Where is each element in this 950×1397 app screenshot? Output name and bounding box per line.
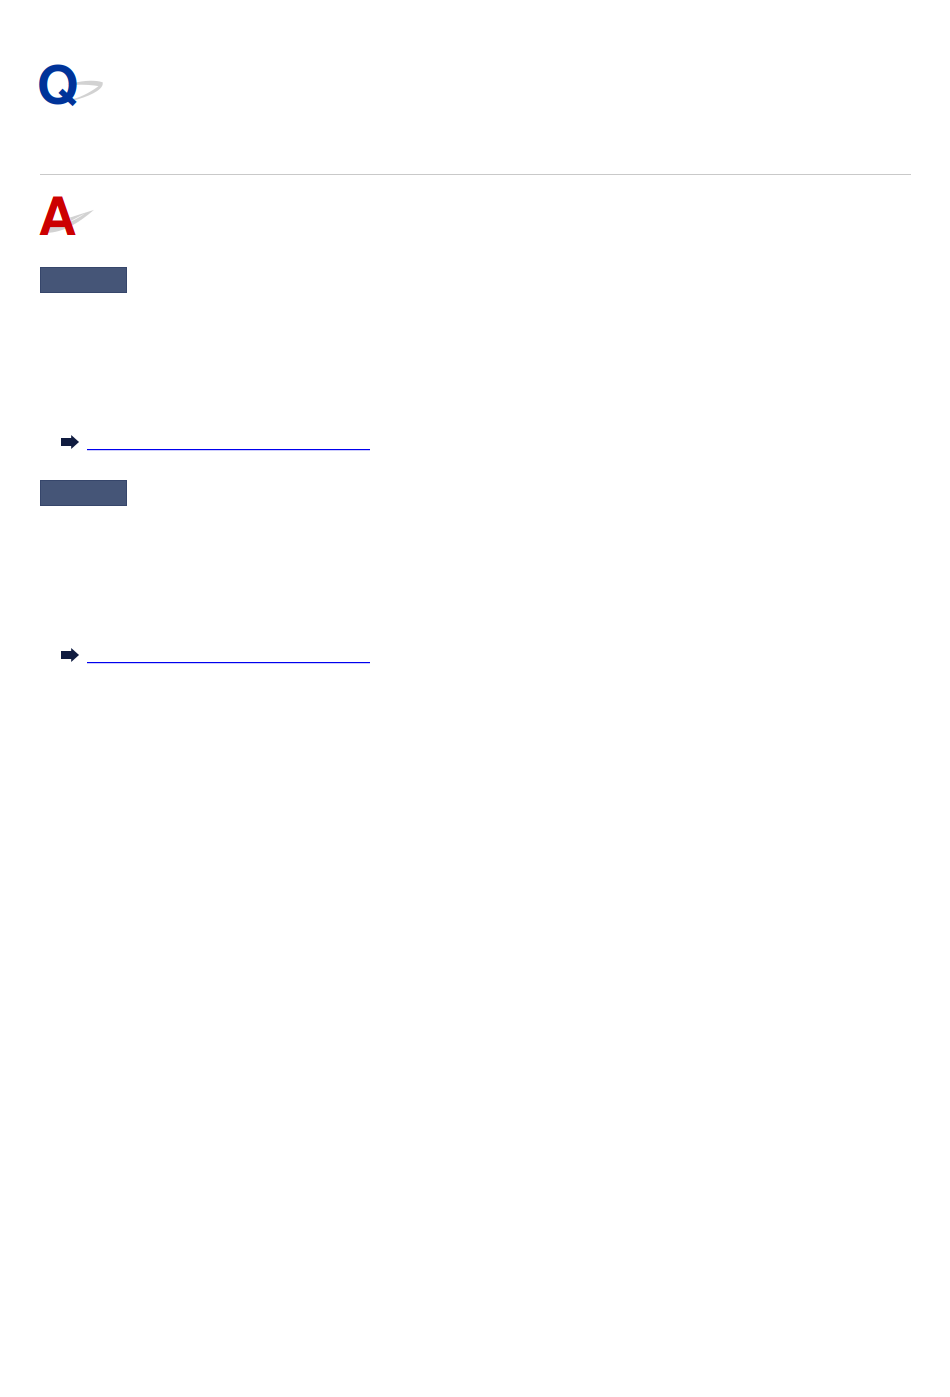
button[interactable]: Related topic [61,647,370,667]
staticText: A [39,193,76,246]
button[interactable]: Related topic [61,434,370,454]
staticText: Q [37,61,79,114]
